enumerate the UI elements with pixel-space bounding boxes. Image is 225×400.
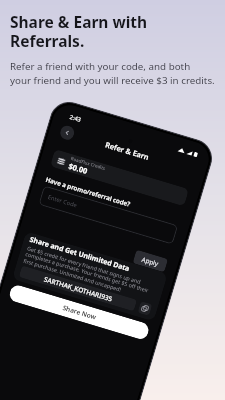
button[interactable]: RoadFlux Credits <box>50 149 189 206</box>
staticText: Share and Get Unlimited Data <box>28 235 131 274</box>
button[interactable]: Apply <box>132 250 168 272</box>
staticText: Enter Code <box>47 193 79 210</box>
staticText: $0.00 <box>67 161 89 176</box>
staticText: Refer a friend with your code, and both … <box>10 60 215 87</box>
staticText: SARTHAK_KOTHARI935 <box>43 274 114 303</box>
button[interactable]: Back <box>58 124 76 141</box>
staticText: Share & Earn with Referrals. <box>10 11 148 52</box>
button[interactable]: Copy code <box>137 301 152 316</box>
staticText: Apply <box>141 255 160 268</box>
staticText: Have a promo/referral code? <box>45 175 132 209</box>
staticText: Refer & Earn <box>104 139 151 162</box>
button[interactable]: SARTHAK_KOTHARI935 <box>19 265 137 311</box>
staticText: RoadFlux Credits <box>70 155 106 171</box>
staticText: Share Now <box>62 303 98 322</box>
staticText: Get $5 credit for every friend that sign… <box>22 244 159 303</box>
button[interactable]: Share Now <box>8 283 150 341</box>
button[interactable]: Enter Code <box>38 185 178 245</box>
staticText: 2:43 <box>69 113 82 124</box>
